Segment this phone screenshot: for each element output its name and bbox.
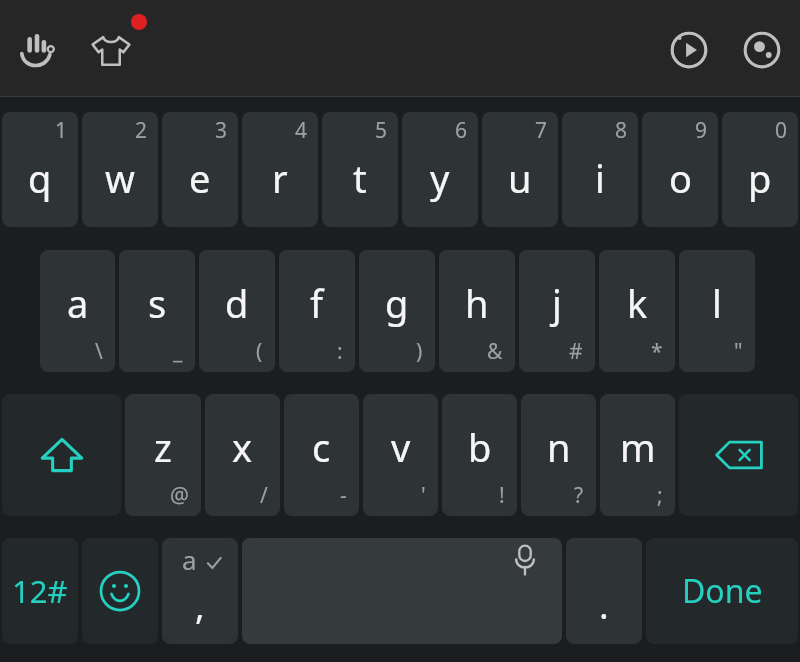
button[interactable]: 7 (482, 112, 558, 227)
staticText: 4 (295, 116, 308, 145)
button[interactable]: a (40, 250, 115, 372)
button[interactable]: 2 (82, 112, 158, 227)
staticText: l (712, 277, 722, 329)
button[interactable]: Done (646, 538, 798, 644)
staticText: q (28, 152, 52, 204)
button[interactable]: Gesture typing (10, 23, 64, 77)
staticText: : (337, 337, 343, 366)
staticText: ; (657, 481, 663, 510)
staticText: ) (416, 337, 423, 366)
staticText: g (385, 277, 409, 329)
staticText: b (468, 421, 492, 473)
button[interactable]: Settings (735, 23, 789, 77)
staticText: k (627, 277, 648, 329)
button[interactable]: 1 (2, 112, 78, 227)
button[interactable]: x (205, 394, 280, 516)
staticText: w (105, 152, 135, 204)
staticText: , (195, 581, 205, 630)
button[interactable]: 9 (642, 112, 718, 227)
staticText: p (748, 152, 772, 204)
button[interactable]: Shift (2, 394, 121, 516)
button[interactable]: Emoji (82, 538, 158, 644)
button[interactable]: . (566, 538, 642, 644)
staticText: . (599, 581, 609, 630)
staticText: n (547, 421, 571, 473)
button[interactable]: Space (242, 538, 562, 644)
staticText: a (67, 277, 89, 329)
staticText: t (353, 152, 367, 204)
staticText: u (508, 152, 532, 204)
staticText: 3 (215, 116, 228, 145)
staticText: Done (682, 569, 763, 613)
button[interactable]: a (162, 538, 238, 644)
staticText: s (148, 277, 167, 329)
button[interactable]: h (439, 250, 515, 372)
staticText: h (465, 277, 489, 329)
staticText: r (272, 152, 288, 204)
button[interactable]: l (679, 250, 755, 372)
staticText: 7 (535, 116, 548, 145)
button[interactable]: n (521, 394, 596, 516)
staticText: v (391, 421, 411, 473)
staticText: f (310, 277, 324, 329)
staticText: 5 (375, 116, 388, 145)
staticText: e (189, 152, 211, 204)
staticText: " (734, 337, 743, 366)
button[interactable]: b (442, 394, 517, 516)
staticText: m (620, 421, 656, 473)
staticText: z (154, 421, 172, 473)
button[interactable]: 0 (722, 112, 798, 227)
staticText: a (182, 542, 197, 572)
staticText: ? (574, 481, 584, 510)
staticText: y (430, 152, 450, 204)
staticText: d (225, 277, 249, 329)
staticText: & (487, 337, 503, 366)
staticText: 6 (455, 116, 468, 145)
staticText: 2 (135, 116, 148, 145)
staticText: ( (256, 337, 263, 366)
button[interactable]: k (599, 250, 675, 372)
staticText: _ (173, 337, 183, 366)
button[interactable]: Backspace (679, 394, 798, 516)
button[interactable]: GIF (662, 23, 716, 77)
staticText: @ (170, 481, 189, 510)
staticText: * (651, 337, 663, 366)
button[interactable]: 3 (162, 112, 238, 227)
staticText: # (569, 337, 583, 366)
button[interactable]: f (279, 250, 355, 372)
staticText: i (595, 152, 605, 204)
staticText: j (552, 277, 562, 329)
button[interactable]: g (359, 250, 435, 372)
staticText: 8 (615, 116, 628, 145)
button[interactable]: z (125, 394, 201, 516)
staticText: x (232, 421, 253, 473)
button[interactable]: 8 (562, 112, 638, 227)
staticText: ! (499, 481, 505, 510)
staticText: - (340, 481, 347, 510)
staticText: 0 (775, 116, 788, 145)
button[interactable]: d (199, 250, 275, 372)
staticText: o (669, 152, 692, 204)
staticText: / (260, 481, 268, 510)
button[interactable]: c (284, 394, 359, 516)
staticText: 12# (12, 570, 68, 612)
staticText: 1 (55, 116, 68, 145)
button[interactable]: 12# (2, 538, 78, 644)
button[interactable]: m (600, 394, 675, 516)
staticText: \ (95, 337, 103, 366)
staticText: 9 (695, 116, 708, 145)
button[interactable]: s (119, 250, 195, 372)
button[interactable]: j (519, 250, 595, 372)
staticText: c (312, 421, 331, 473)
staticText: ' (421, 481, 426, 510)
button[interactable]: 5 (322, 112, 398, 227)
button[interactable]: Themes (84, 23, 138, 77)
button[interactable]: 4 (242, 112, 318, 227)
button[interactable]: 6 (402, 112, 478, 227)
button[interactable]: v (363, 394, 438, 516)
